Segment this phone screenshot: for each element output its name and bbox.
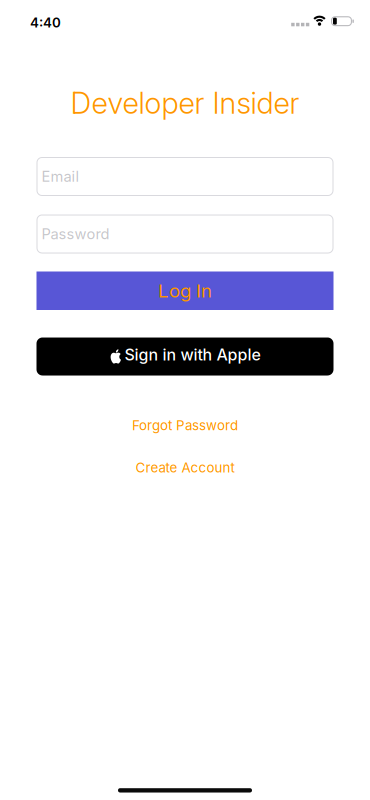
staticText: Email [41,168,79,185]
staticText: Developer Insider [70,86,299,120]
button[interactable]: Forgot Password [132,418,238,433]
staticText: Forgot Password [132,418,238,433]
textField[interactable]: Email [41,168,79,185]
button[interactable]: Sign in with Apple [36,337,333,375]
button[interactable]: Log In [36,271,333,310]
staticText: Sign in with Apple [124,345,260,364]
staticText: 4:40 [30,15,61,30]
button[interactable]: Create Account [135,460,234,475]
staticText: Password [41,225,109,243]
staticText: Log In [158,280,212,302]
staticText: Create Account [135,460,234,475]
secureTextField[interactable]: Password [41,225,109,243]
